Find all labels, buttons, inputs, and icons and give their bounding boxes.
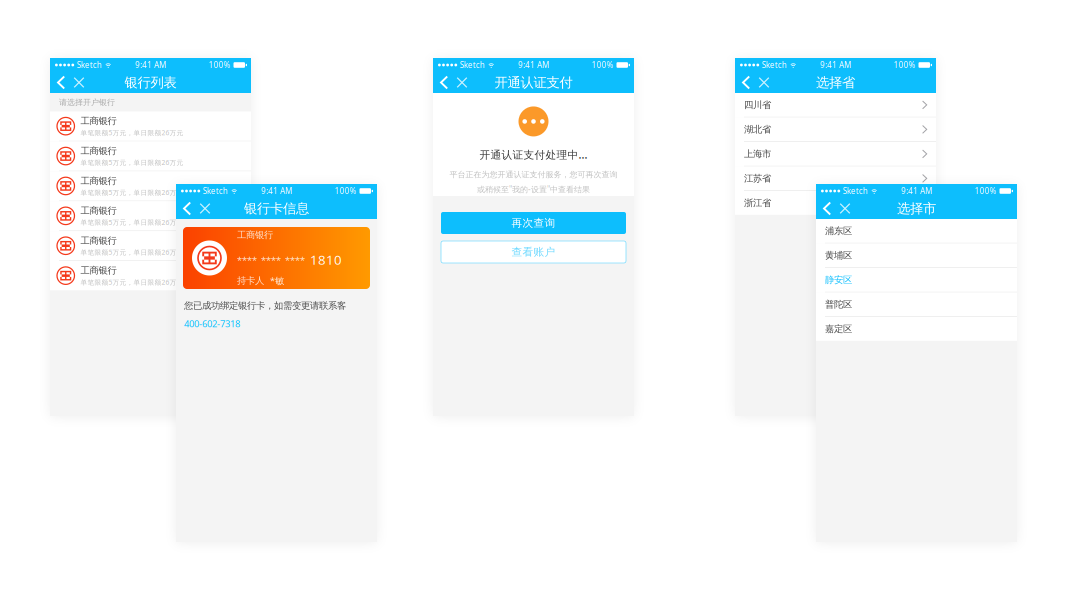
button[interactable]: 湖北省 — [735, 117, 936, 142]
button[interactable]: 黄埔区 — [816, 243, 1017, 268]
button[interactable]: 工商银行 — [50, 171, 251, 201]
button[interactable]: Close — [195, 197, 215, 219]
staticText: 100% — [974, 186, 996, 196]
button[interactable]: 工商银行 — [50, 201, 251, 231]
staticText: 100% — [591, 60, 613, 70]
staticText: 开通认证支付处理中... — [479, 147, 587, 162]
staticText: 工商银行 — [80, 235, 116, 246]
button[interactable]: Close — [69, 71, 89, 93]
staticText: Sketch — [203, 186, 228, 196]
staticText: 9:41 AM — [518, 60, 549, 70]
staticText: 查看账户 — [511, 245, 555, 258]
staticText: 上海市 — [744, 148, 771, 160]
button[interactable]: Back — [819, 197, 835, 219]
staticText: 平台正在为您开通认证支付服务，您可再次查询 — [449, 170, 617, 179]
staticText: 单笔限额5万元，单日限额26万元 — [80, 278, 183, 287]
staticText: 黄埔区 — [825, 250, 852, 261]
staticText: 100% — [893, 60, 915, 70]
staticText: 100% — [208, 60, 230, 70]
staticText: 100% — [334, 186, 356, 196]
staticText: 工商银行 — [80, 265, 116, 276]
button[interactable]: 工商银行 — [50, 231, 251, 261]
button[interactable]: Close — [754, 71, 774, 93]
button[interactable]: 查看账户 — [441, 241, 626, 263]
button[interactable]: Back — [738, 71, 754, 93]
staticText: 9:41 AM — [901, 186, 932, 196]
button[interactable]: Close — [452, 71, 472, 93]
staticText: 工商银行 — [237, 229, 273, 241]
staticText: 或稍候至"我的-设置"中查看结果 — [477, 184, 590, 194]
button[interactable]: Close — [835, 197, 855, 219]
staticText: 浙江省 — [744, 197, 771, 209]
staticText: 银行卡信息 — [244, 200, 309, 217]
button[interactable]: 再次查询 — [441, 212, 626, 234]
staticText: **** **** **** — [237, 254, 305, 266]
staticText: Sketch — [77, 60, 102, 70]
staticText: 工商银行 — [80, 145, 116, 157]
button[interactable]: 嘉定区 — [816, 317, 1017, 341]
button[interactable]: 静安区 — [816, 268, 1017, 292]
staticText: 普陀区 — [825, 299, 852, 310]
button[interactable]: 工商银行 — [50, 141, 251, 171]
button[interactable]: 400-602-7318 — [184, 311, 240, 330]
staticText: 您已成功绑定银行卡，如需变更请联系客 — [184, 300, 346, 311]
staticText: 静安区 — [825, 274, 852, 286]
staticText: 再次查询 — [511, 216, 555, 229]
staticText: Sketch — [762, 60, 787, 70]
button[interactable]: 工商银行 — [50, 111, 251, 141]
staticText: 单笔限额5万元，单日限额26万元 — [80, 248, 183, 257]
staticText: 单笔限额5万元，单日限额26万元 — [80, 218, 183, 227]
staticText: Sketch — [460, 60, 485, 70]
staticText: 选择省 — [816, 74, 855, 91]
staticText: 开通认证支付 — [494, 74, 572, 91]
button[interactable]: 江苏省 — [735, 166, 936, 191]
staticText: 工商银行 — [80, 115, 116, 127]
staticText: 浦东区 — [825, 225, 852, 237]
button[interactable]: 四川省 — [735, 93, 936, 117]
staticText: 选择市 — [897, 200, 936, 217]
staticText: 单笔限额5万元，单日限额26万元 — [80, 188, 183, 197]
staticText: 请选择开户银行 — [59, 97, 115, 107]
staticText: 持卡人 — [237, 275, 264, 286]
staticText: 银行列表 — [124, 74, 176, 91]
staticText: 湖北省 — [744, 124, 771, 135]
staticText: 工商银行 — [80, 175, 116, 186]
button[interactable]: Back — [436, 71, 452, 93]
staticText: 四川省 — [744, 99, 771, 111]
staticText: 400-602-7318 — [184, 317, 240, 330]
staticText: 9:41 AM — [820, 60, 851, 70]
button[interactable]: 工商银行 — [50, 261, 251, 290]
staticText: 单笔限额5万元，单日限额26万元 — [80, 128, 183, 137]
staticText: 9:41 AM — [261, 186, 292, 196]
button[interactable]: Back — [53, 71, 69, 93]
button[interactable]: 上海市 — [735, 142, 936, 166]
button[interactable]: 浙江省 — [735, 191, 936, 215]
staticText: 江苏省 — [744, 173, 771, 184]
button[interactable]: 普陀区 — [816, 292, 1017, 317]
button[interactable]: Back — [179, 197, 195, 219]
staticText: 嘉定区 — [825, 323, 852, 335]
staticText: Sketch — [843, 186, 868, 196]
staticText: 9:41 AM — [135, 60, 166, 70]
staticText: *敏 — [270, 274, 284, 287]
staticText: 1810 — [310, 251, 342, 268]
staticText: 工商银行 — [80, 205, 116, 216]
button[interactable]: 浦东区 — [816, 219, 1017, 243]
staticText: 单笔限额5万元，单日限额26万元 — [80, 158, 183, 167]
